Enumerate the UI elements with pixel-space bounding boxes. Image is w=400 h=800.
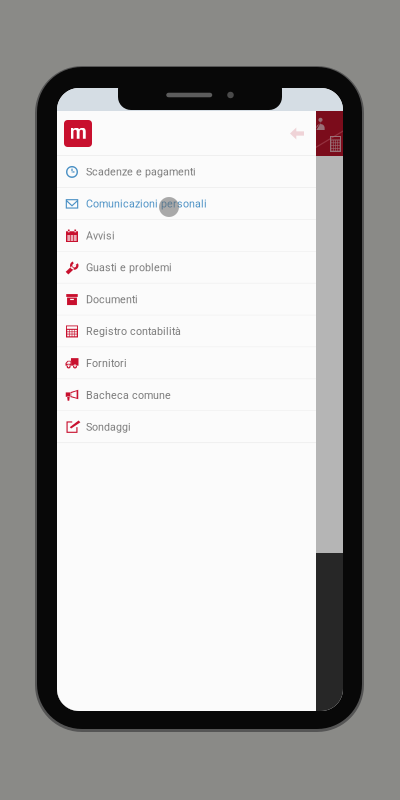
staticText: Avvisi [86, 229, 115, 242]
staticText: Sondaggi [86, 421, 131, 433]
button[interactable]: Scadenze e pagamenti [57, 156, 316, 188]
staticText: Guasti e problemi [86, 261, 172, 274]
button[interactable]: Documenti [57, 284, 316, 315]
button[interactable]: Registro contabilità [57, 315, 316, 347]
staticText: Documenti [86, 293, 138, 306]
staticText: Fornitori [86, 357, 127, 370]
button[interactable]: Home [64, 120, 92, 147]
button[interactable]: Avvisi [57, 220, 316, 252]
staticText: m [69, 120, 86, 144]
staticText: Comunicazioni personali [86, 198, 207, 210]
button[interactable]: Comunicazioni personali [57, 188, 316, 220]
staticText: Registro contabilità [86, 325, 181, 338]
staticText: Bacheca comune [86, 389, 171, 401]
button[interactable]: Sondaggi [57, 411, 316, 443]
button[interactable]: Back [284, 122, 310, 144]
button[interactable]: Guasti e problemi [57, 252, 316, 284]
button[interactable]: Fornitori [57, 347, 316, 379]
staticText: Scadenze e pagamenti [86, 166, 196, 178]
button[interactable]: Bacheca comune [57, 379, 316, 411]
